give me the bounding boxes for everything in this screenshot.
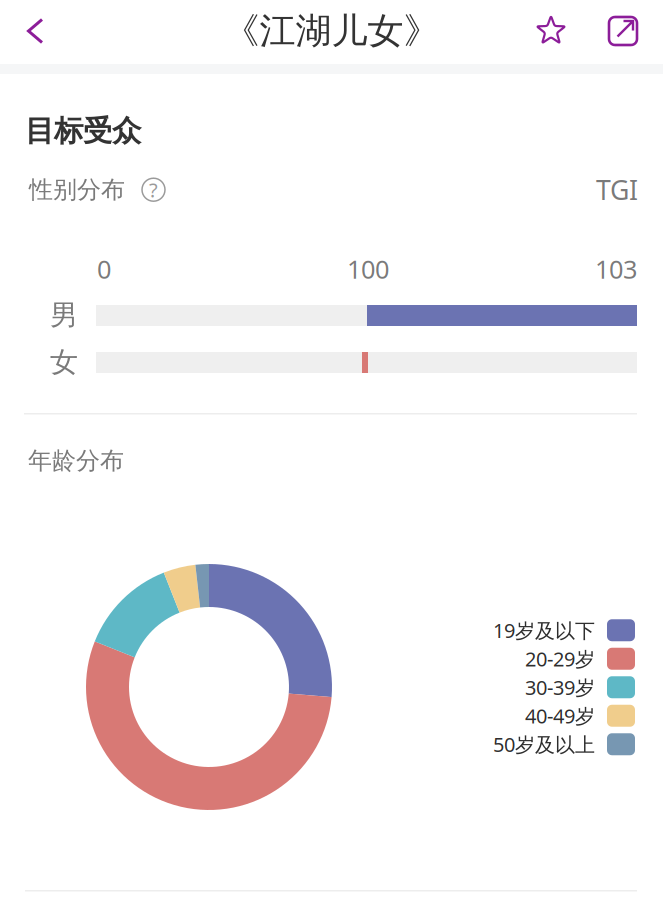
staticText: 目标受众 [25, 113, 141, 149]
button[interactable]: Share [595, 0, 651, 62]
staticText: 男 [50, 298, 78, 332]
button[interactable]: Back [0, 0, 70, 62]
staticText: 50岁及以上 [493, 731, 595, 758]
button[interactable]: Favorite [522, 0, 580, 62]
staticText: 30-39岁 [525, 674, 595, 701]
staticText: 100 [347, 252, 389, 286]
staticText: 性别分布 [29, 175, 125, 204]
staticText: 20-29岁 [525, 645, 595, 672]
staticText: 女 [50, 345, 78, 379]
staticText: ? [149, 176, 158, 203]
staticText: 0 [97, 252, 111, 286]
staticText: 103 [595, 252, 637, 286]
staticText: 年龄分布 [28, 446, 124, 475]
staticText: 19岁及以下 [493, 617, 595, 644]
staticText: 《江湖儿女》 [223, 9, 439, 53]
staticText: TGI [596, 172, 638, 207]
staticText: 40-49岁 [525, 702, 595, 729]
